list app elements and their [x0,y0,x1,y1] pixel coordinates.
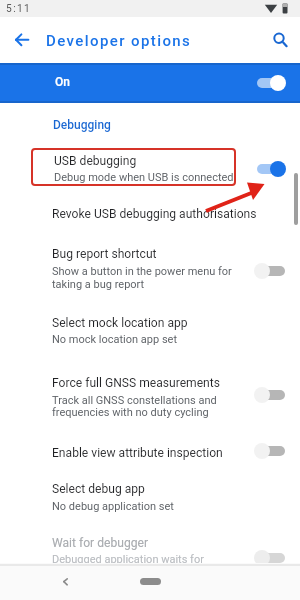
staticText: USB debugging [54,154,137,168]
button[interactable] [265,26,293,52]
button[interactable] [0,438,300,466]
staticText: Debugged application waits for [52,553,204,566]
staticText: 5:11 [6,3,32,15]
staticText: Force full GNSS measurements [52,376,220,390]
staticText: Enable view attribute inspection [52,446,223,460]
button[interactable] [128,566,174,598]
staticText: taking a bug report [52,278,145,291]
button[interactable] [50,566,80,598]
button[interactable] [0,308,300,350]
staticText: Bug report shortcut [52,247,157,261]
staticText: frequencies with no duty cycling [52,406,209,419]
button[interactable] [0,530,300,564]
staticText: Debug mode when USB is connected [54,171,234,184]
staticText: Track all GNSS constellations and [52,394,217,407]
button[interactable] [8,28,34,52]
staticText: Select debug app [52,482,145,496]
staticText: Debugging [53,118,111,132]
button[interactable] [0,198,300,230]
staticText: Select mock location app [52,316,188,330]
staticText: No mock location app set [52,333,178,346]
staticText: Revoke USB debugging authorisations [52,207,257,221]
button[interactable] [0,145,300,189]
button[interactable] [0,368,300,418]
staticText: No debug application set [52,500,174,513]
staticText: On [55,75,70,89]
button[interactable] [0,63,300,103]
staticText: Show a button in the power menu for [52,265,232,278]
staticText: Developer options [46,32,192,50]
staticText: Wait for debugger [52,536,148,550]
button[interactable] [0,474,300,516]
button[interactable] [0,240,300,292]
